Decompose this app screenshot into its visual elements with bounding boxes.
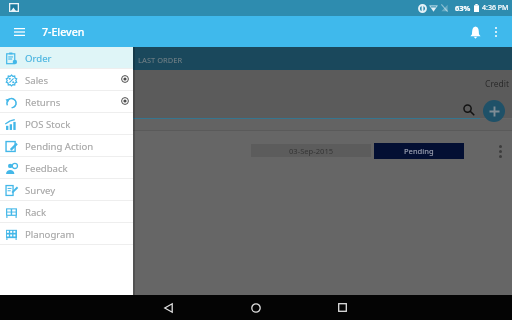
button[interactable]: More options — [487, 23, 505, 41]
button[interactable]: Search — [460, 101, 478, 119]
staticText: Survey — [25, 184, 56, 197]
button[interactable]: Add — [483, 100, 505, 122]
staticText: 03-Sep-2015 — [289, 146, 334, 156]
button[interactable]: Planogram — [0, 223, 133, 245]
button[interactable]: Recents — [330, 295, 355, 320]
staticText: Pending Action — [25, 140, 94, 153]
staticText: LAST ORDER — [138, 55, 183, 65]
button[interactable]: Home — [243, 295, 268, 320]
button[interactable]: Survey — [0, 179, 133, 201]
staticText: Feedback — [25, 162, 68, 175]
button[interactable]: Pending — [374, 143, 464, 159]
button[interactable]: Rack — [0, 201, 133, 223]
staticText: 7-Eleven — [42, 25, 85, 39]
staticText: Rack — [25, 206, 47, 219]
staticText: 4:36 PM — [482, 3, 509, 13]
button[interactable]: More options — [492, 140, 508, 162]
staticText: Credit — [0, 78, 509, 90]
staticText: Sales — [25, 74, 49, 87]
staticText: Planogram — [25, 228, 75, 241]
button[interactable]: Notifications — [464, 21, 486, 43]
staticText: 63% — [455, 3, 471, 13]
button[interactable]: Returns — [0, 91, 133, 113]
button[interactable]: Order — [0, 47, 133, 69]
button[interactable]: Pending Action — [0, 135, 133, 157]
button[interactable]: Feedback — [0, 157, 133, 179]
staticText: Returns — [25, 96, 61, 109]
button[interactable]: POS Stock — [0, 113, 133, 135]
staticText: Order — [25, 52, 52, 65]
button[interactable]: Open navigation drawer — [8, 21, 30, 43]
button[interactable]: 03-Sep-2015 — [251, 144, 371, 157]
button[interactable]: Back — [156, 295, 181, 320]
staticText: POS Stock — [25, 118, 71, 131]
staticText: Pending — [404, 146, 434, 156]
button[interactable]: Sales — [0, 69, 133, 91]
